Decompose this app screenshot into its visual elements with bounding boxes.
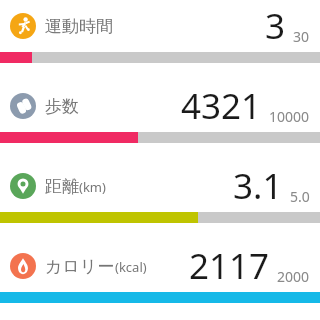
button[interactable]: Distance	[0, 160, 320, 240]
staticText: 3	[265, 2, 286, 50]
staticText: 4321	[181, 82, 262, 130]
staticText: 歩数	[45, 96, 79, 117]
other: Exercise time	[10, 13, 36, 39]
other: Distance	[10, 173, 36, 199]
staticText: (kcal)	[115, 258, 147, 276]
staticText: (km)	[79, 178, 106, 196]
staticText: 運動時間	[45, 16, 113, 37]
button[interactable]: Steps	[0, 80, 320, 160]
staticText: カロリー	[45, 256, 115, 277]
staticText: 距離	[45, 176, 79, 197]
button[interactable]: Calories	[0, 240, 320, 320]
staticText: 3.1	[233, 162, 283, 210]
other: Steps	[10, 93, 36, 119]
staticText: 2117	[189, 242, 270, 290]
staticText: 5.0	[290, 187, 310, 206]
staticText: 10000	[269, 107, 310, 126]
other: Calories	[10, 253, 36, 279]
staticText: 2000	[277, 267, 310, 286]
button[interactable]: Exercise time	[0, 0, 320, 80]
staticText: 30	[293, 27, 310, 46]
